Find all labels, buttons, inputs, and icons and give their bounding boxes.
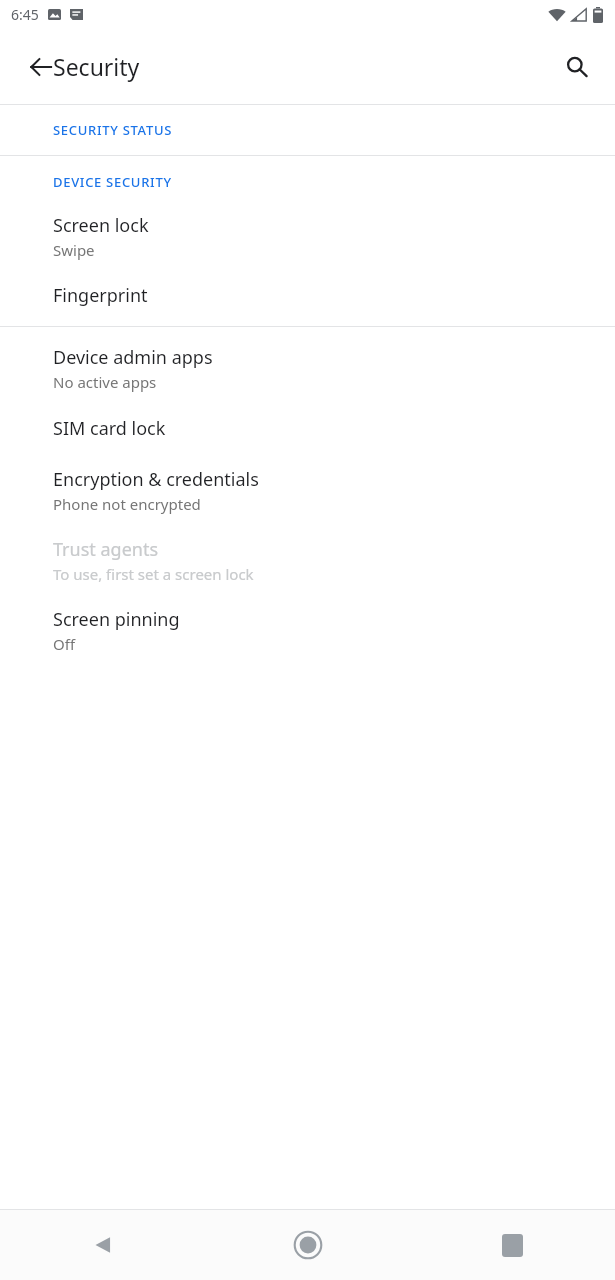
button[interactable]: Home: [205, 1210, 410, 1280]
button[interactable]: Trust agents: [0, 537, 615, 584]
button[interactable]: Search: [553, 43, 601, 91]
button[interactable]: SIM card lock: [0, 416, 615, 441]
staticText: Screen lock: [53, 213, 149, 238]
staticText: Phone not encrypted: [53, 494, 201, 514]
staticText: Device admin apps: [53, 345, 213, 370]
button[interactable]: Recent apps: [410, 1210, 615, 1280]
button[interactable]: Screen lock: [0, 213, 615, 260]
staticText: DEVICE SECURITY: [53, 173, 172, 191]
staticText: Swipe: [53, 240, 95, 260]
staticText: Security: [53, 51, 140, 82]
button[interactable]: Fingerprint: [0, 283, 615, 308]
staticText: Trust agents: [53, 537, 159, 562]
staticText: SECURITY STATUS: [53, 121, 173, 139]
staticText: Screen pinning: [53, 607, 180, 632]
button[interactable]: Back: [0, 1210, 205, 1280]
staticText: Encryption & credentials: [53, 467, 259, 492]
staticText: Fingerprint: [53, 283, 148, 308]
button[interactable]: Back: [17, 43, 65, 91]
staticText: No active apps: [53, 372, 157, 392]
staticText: To use, first set a screen lock: [53, 564, 254, 584]
staticText: 6:45: [11, 5, 39, 24]
button[interactable]: Device admin apps: [0, 345, 615, 392]
staticText: SIM card lock: [53, 416, 166, 441]
button[interactable]: Encryption & credentials: [0, 467, 615, 514]
button[interactable]: Screen pinning: [0, 607, 615, 654]
staticText: Off: [53, 634, 76, 654]
